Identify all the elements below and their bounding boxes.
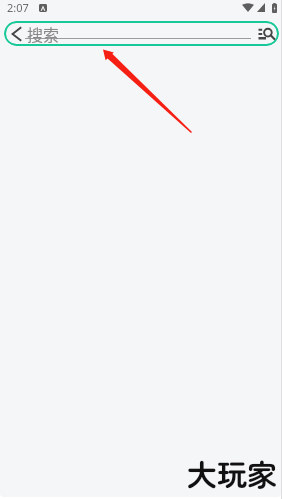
button[interactable]: Search bbox=[257, 25, 275, 43]
button[interactable]: Back bbox=[4, 21, 279, 46]
staticText: 2:07 bbox=[7, 0, 29, 15]
staticText: 搜索 bbox=[27, 22, 60, 45]
staticText: 大玩家 bbox=[187, 451, 277, 494]
button[interactable]: Back bbox=[9, 23, 23, 44]
